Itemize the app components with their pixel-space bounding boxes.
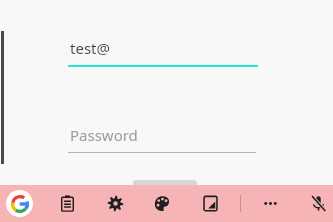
- button[interactable]: [133, 180, 197, 192]
- button[interactable]: test@: [68, 30, 258, 70]
- button[interactable]: More options: [257, 190, 284, 217]
- staticText: Password: [70, 125, 138, 145]
- button[interactable]: Voice input muted: [305, 190, 332, 217]
- button[interactable]: Themes: [149, 190, 176, 217]
- button[interactable]: Google search: [6, 190, 33, 217]
- button[interactable]: Settings: [102, 190, 129, 217]
- button[interactable]: Clipboard: [54, 190, 81, 217]
- button[interactable]: Password: [68, 118, 256, 153]
- button[interactable]: One-handed mode: [197, 190, 224, 217]
- staticText: test@: [70, 38, 110, 58]
